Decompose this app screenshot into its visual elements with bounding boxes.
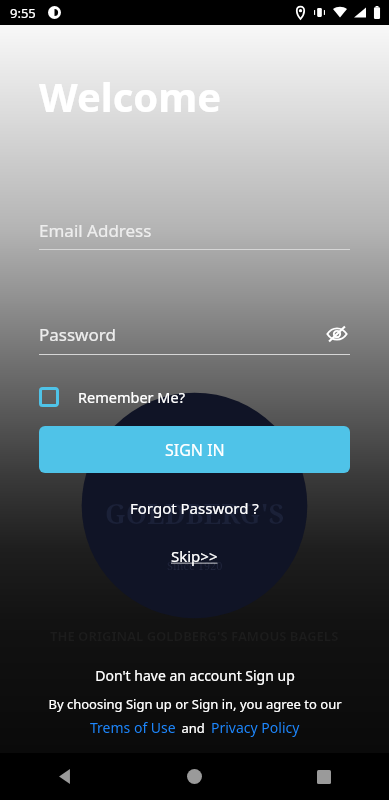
staticText: THE ORIGINAL GOLDBERG'S FAMOUS BAGELS (50, 627, 339, 645)
button[interactable]: Remember Me? (39, 383, 185, 411)
button[interactable]: Skip>> (165, 543, 224, 569)
button[interactable]: Email Address (39, 219, 350, 250)
button[interactable]: Don't have an account Sign up (89, 664, 301, 687)
staticText: Welcome (39, 69, 222, 123)
staticText: Password (39, 323, 324, 346)
button[interactable]: Trems of Use (88, 716, 178, 739)
button[interactable]: Back (0, 753, 129, 800)
staticText: Email Address (39, 219, 350, 242)
button[interactable]: Privacy Policy (209, 716, 302, 739)
staticText: GOLDBERG'S (105, 495, 285, 532)
button[interactable]: Recent apps (259, 753, 389, 800)
staticText: Since 1920 (167, 558, 223, 573)
staticText: and (178, 719, 209, 737)
button[interactable]: Password (39, 321, 350, 355)
button[interactable]: SIGN IN (39, 426, 350, 473)
staticText: 9:55 (10, 4, 36, 22)
button[interactable]: Forgot Password ? (124, 495, 265, 521)
staticText: SIGN IN (165, 439, 225, 461)
staticText: By choosing Sign up or Sign in, you agre… (48, 695, 342, 713)
button[interactable]: Home (129, 753, 259, 800)
staticText: Remember Me? (78, 387, 185, 407)
button[interactable]: Show password (324, 321, 350, 347)
